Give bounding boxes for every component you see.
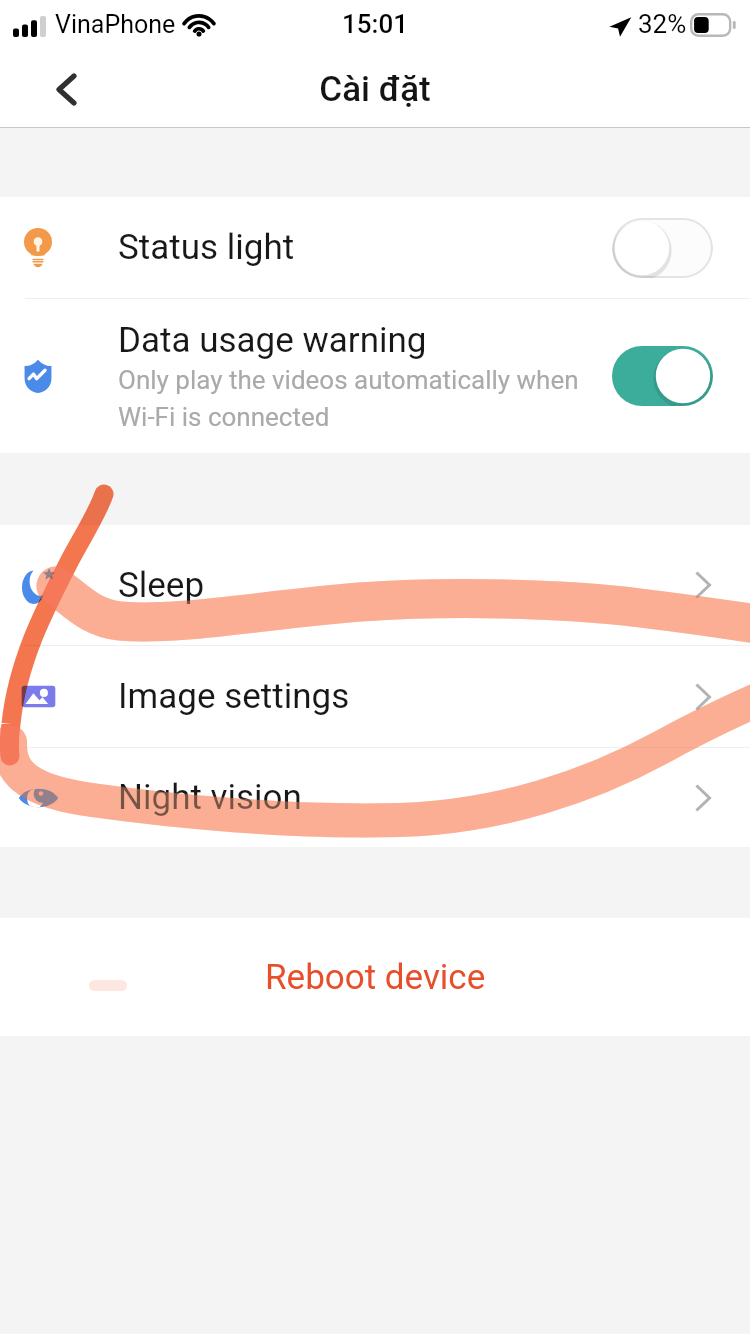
button[interactable]: Switch on [612, 346, 713, 406]
button[interactable]: Status light [0, 197, 750, 298]
button[interactable]: Night vision [0, 748, 750, 847]
button[interactable]: Back [38, 61, 94, 117]
staticText: Sleep [118, 565, 205, 606]
staticText: VinaPhone [55, 10, 176, 39]
button[interactable]: Data usage warning [0, 299, 750, 453]
staticText: 32% [638, 9, 687, 39]
button[interactable]: Image settings [0, 646, 750, 747]
button[interactable]: Reboot device [0, 918, 750, 1036]
staticText: Night vision [118, 777, 302, 818]
staticText: Reboot device [265, 957, 486, 998]
staticText: Status light [118, 227, 295, 268]
staticText: Data usage warning [118, 320, 427, 361]
staticText: Cài đặt [319, 69, 431, 110]
button[interactable]: Switch off [612, 218, 713, 278]
staticText: Only play the videos automatically when … [118, 365, 579, 432]
button[interactable]: Sleep [0, 525, 750, 645]
staticText: 15:01 [342, 9, 408, 39]
staticText: Image settings [118, 676, 350, 717]
